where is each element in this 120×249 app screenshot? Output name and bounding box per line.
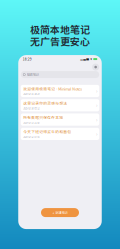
- button[interactable]: + 新建笔记: [41, 208, 79, 217]
- staticText: 极简本地笔记: [30, 22, 90, 36]
- staticText: 所有数据只保存在本地: [23, 115, 63, 120]
- button[interactable]: 这里记录你的灵感与想法: [21, 99, 99, 111]
- staticText: 无广告更安心: [30, 34, 90, 48]
- button[interactable]: 所有数据只保存在本地: [21, 113, 99, 126]
- staticText: 2025-02-13 21:40: [23, 121, 39, 124]
- button[interactable]: 搜索笔记: [21, 71, 99, 78]
- staticText: 这里记录你的灵感与想法: [23, 100, 67, 106]
- staticText: ›: [96, 102, 97, 109]
- button[interactable]: 今天下班记得买牛奶和面包: [21, 128, 99, 140]
- staticText: ▾: [90, 57, 92, 61]
- button[interactable]: Settings: [92, 64, 99, 71]
- staticText: ›: [96, 116, 97, 123]
- staticText: 18:29: [23, 57, 32, 61]
- staticText: 今天下班记得买牛奶和面包: [23, 129, 71, 134]
- staticText: 搜索笔记: [26, 72, 38, 77]
- button[interactable]: 欢迎使用极简笔记 - Minimal Notes: [21, 85, 99, 97]
- staticText: 2025-02-14 09:12: [23, 106, 39, 110]
- staticText: ▂▄▆: [80, 57, 89, 61]
- staticText: ›: [96, 87, 97, 94]
- staticText: + 新建笔记: [52, 210, 67, 215]
- staticText: ›: [96, 130, 97, 137]
- staticText: 欢迎使用极简笔记 - Minimal Notes: [23, 86, 82, 91]
- staticText: 2025-02-15 18:29: [23, 92, 39, 96]
- staticText: 2025-02-12 07:55: [23, 135, 39, 139]
